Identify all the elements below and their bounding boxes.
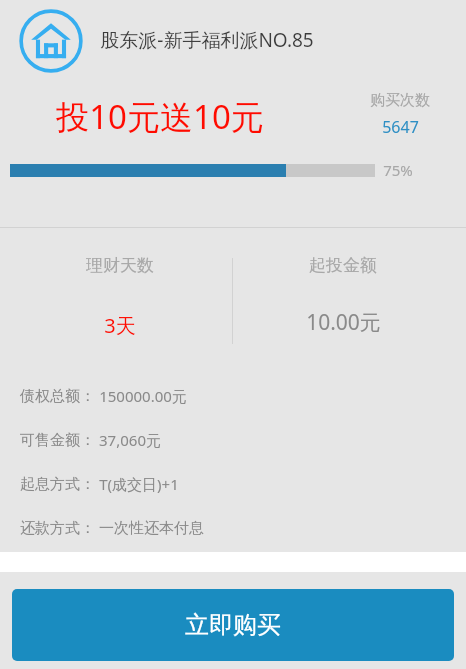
staticText: 37,060元 <box>99 430 161 450</box>
staticText: 5647 <box>382 116 419 138</box>
staticText: 150000.00元 <box>99 386 187 406</box>
staticText: 债权总额： <box>20 387 95 406</box>
other: Product icon <box>18 8 84 74</box>
staticText: 可售金额： <box>20 431 95 450</box>
staticText: 股东派-新手福利派NO.85 <box>100 27 314 53</box>
staticText: 3天 <box>104 312 136 339</box>
button[interactable]: 立即购买 <box>12 589 454 661</box>
staticText: 75% <box>383 160 413 180</box>
staticText: 10.00元 <box>306 308 381 337</box>
staticText: 起息方式： <box>20 475 95 494</box>
staticText: 购买次数 <box>370 91 430 110</box>
staticText: 还款方式： <box>20 519 95 538</box>
staticText: 一次性还本付息 <box>99 519 204 538</box>
staticText: T(成交日)+1 <box>99 474 179 494</box>
staticText: 理财天数 <box>86 255 154 276</box>
staticText: 起投金额 <box>309 255 377 276</box>
staticText: 投10元送10元 <box>56 94 264 139</box>
staticText: 立即购买 <box>185 610 281 640</box>
